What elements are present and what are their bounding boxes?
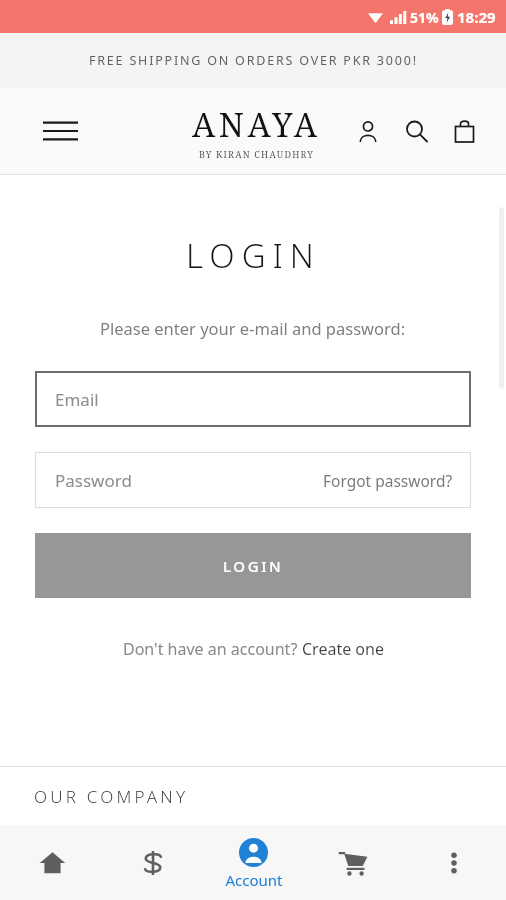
staticText: Password: [55, 469, 132, 492]
staticText: Account: [225, 870, 283, 890]
button[interactable]: Home: [5, 825, 100, 900]
staticText: LOGIN: [186, 233, 321, 278]
button[interactable]: Account: [348, 111, 388, 151]
button[interactable]: Password: [35, 452, 471, 508]
button[interactable]: Don't have an account?: [123, 638, 384, 660]
button[interactable]: Currency: [105, 825, 200, 900]
staticText: LOGIN: [223, 556, 284, 576]
button[interactable]: Search: [396, 111, 436, 151]
button[interactable]: LOGIN: [35, 533, 471, 598]
staticText: FREE SHIPPING ON ORDERS OVER PKR 3000!: [89, 52, 418, 69]
staticText: OUR COMPANY: [34, 785, 189, 808]
staticText: 18:29: [457, 7, 496, 27]
staticText: Please enter your e-mail and password:: [100, 317, 406, 339]
button[interactable]: Menu: [36, 107, 84, 155]
button[interactable]: Forgot password?: [323, 470, 453, 491]
button[interactable]: Cart: [444, 111, 484, 151]
staticText: Forgot password?: [323, 470, 453, 491]
staticText: Email: [55, 388, 99, 411]
staticText: BY KIRAN CHAUDHRY: [199, 148, 315, 160]
staticText: ANAYA: [192, 102, 321, 147]
button[interactable]: Cart: [306, 825, 401, 900]
staticText: 51%: [410, 8, 439, 27]
staticText: Create one: [302, 638, 384, 660]
button[interactable]: OUR COMPANY: [0, 767, 506, 825]
button[interactable]: More options: [406, 825, 501, 900]
staticText: Don't have an account?: [123, 638, 302, 660]
button[interactable]: Account: [206, 825, 301, 900]
button[interactable]: Email: [35, 371, 471, 427]
